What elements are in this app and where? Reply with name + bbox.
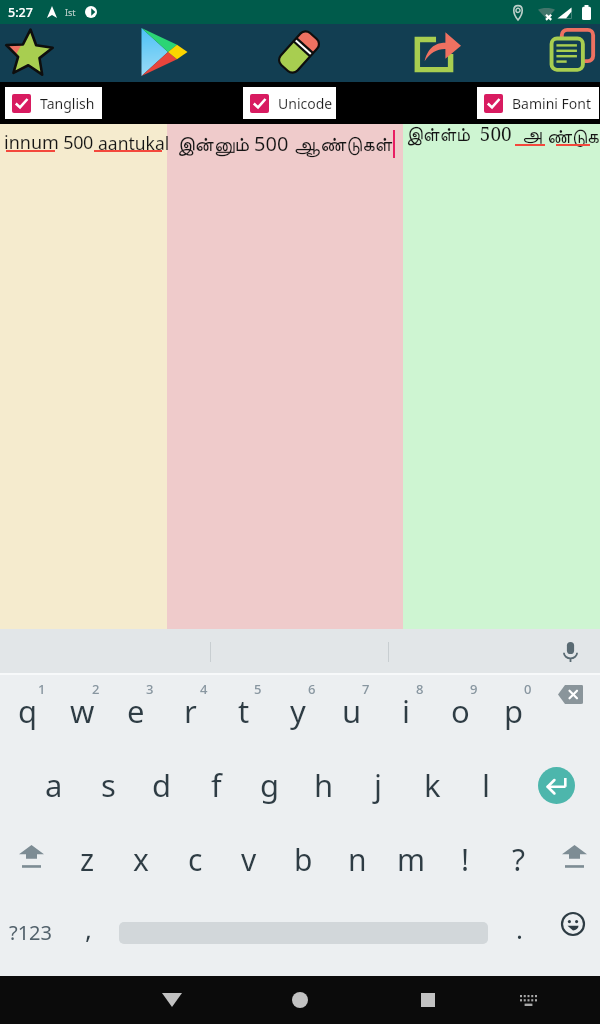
staticText: இன்னும் 500 ஆண்டுகள்	[177, 130, 393, 157]
button[interactable]: 1	[1, 675, 55, 747]
button[interactable]: z	[60, 823, 114, 895]
button[interactable]: 7	[325, 675, 379, 747]
button[interactable]: Open Play Store	[125, 24, 203, 82]
staticText: g	[260, 764, 280, 806]
staticText: m	[397, 839, 426, 880]
button[interactable]: 6	[271, 675, 325, 747]
button[interactable]: h	[297, 749, 351, 821]
button[interactable]: Tanglish	[5, 87, 102, 119]
staticText: 5:27	[8, 4, 33, 21]
button[interactable]: b	[276, 823, 330, 895]
button[interactable]: Share	[395, 24, 475, 82]
staticText: z	[80, 839, 95, 880]
button[interactable]: Unicode	[243, 87, 336, 119]
button[interactable]	[0, 124, 167, 629]
staticText: k	[424, 764, 441, 806]
staticText: 3	[146, 680, 154, 698]
button[interactable]: Back	[142, 976, 202, 1024]
staticText: e	[127, 690, 145, 732]
button[interactable]: 8	[379, 675, 433, 747]
staticText: 8	[416, 680, 424, 698]
button[interactable]: Rate app	[0, 24, 68, 82]
button[interactable]: a	[27, 749, 81, 821]
button[interactable]: v	[222, 823, 276, 895]
staticText: இள்ள்ம் 500	[406, 121, 522, 147]
staticText: !	[461, 839, 470, 880]
staticText: .	[516, 911, 523, 946]
button[interactable]: !	[438, 823, 492, 895]
button[interactable]: Clear text	[260, 24, 338, 82]
staticText: ண்டுகள்	[547, 128, 600, 147]
button[interactable]: d	[135, 749, 189, 821]
staticText: 500	[59, 130, 98, 155]
staticText: v	[241, 839, 257, 880]
staticText: 9	[470, 680, 478, 698]
staticText: ,	[85, 911, 92, 946]
button[interactable]	[211, 629, 388, 675]
staticText: c	[188, 839, 203, 880]
button[interactable]: g	[243, 749, 297, 821]
button[interactable]	[389, 629, 600, 675]
button[interactable]: 9	[433, 675, 487, 747]
button[interactable]: Home	[270, 976, 330, 1024]
button[interactable]: Shift	[2, 819, 58, 891]
staticText: அ	[522, 121, 547, 147]
button[interactable]: ?	[492, 823, 546, 895]
button[interactable]: Bamini Font	[477, 87, 599, 119]
button[interactable]: j	[351, 749, 405, 821]
button[interactable]	[0, 629, 210, 675]
button[interactable]: c	[168, 823, 222, 895]
staticText: ?123	[9, 919, 52, 946]
staticText: q	[18, 690, 38, 732]
staticText: f	[211, 764, 222, 806]
button[interactable]	[403, 124, 600, 629]
button[interactable]: 3	[109, 675, 163, 747]
button[interactable]: Voice input	[556, 638, 584, 666]
button[interactable]	[167, 124, 403, 629]
button[interactable]: Emoji	[546, 891, 600, 963]
button[interactable]: ,	[62, 896, 114, 968]
staticText: Unicode	[278, 94, 333, 113]
staticText: Ist	[65, 6, 76, 18]
staticText: o	[451, 690, 470, 732]
staticText: 5	[254, 680, 262, 698]
staticText: 1	[38, 680, 46, 698]
button[interactable]: 0	[487, 675, 541, 747]
button[interactable]: Switch keyboard	[498, 976, 558, 1024]
staticText: Bamini Font	[512, 94, 592, 113]
button[interactable]: k	[405, 749, 459, 821]
button[interactable]: Backspace	[544, 675, 600, 747]
staticText: aantukal	[98, 131, 170, 155]
button[interactable]: .	[492, 896, 546, 968]
button[interactable]: 4	[163, 675, 217, 747]
button[interactable]: Recent apps	[398, 976, 458, 1024]
staticText: 2	[92, 680, 100, 698]
staticText: d	[152, 764, 172, 806]
button[interactable]: Shift	[545, 819, 600, 891]
staticText: t	[238, 690, 250, 732]
button[interactable]: ?123	[0, 896, 60, 968]
staticText: s	[101, 764, 116, 806]
button[interactable]: n	[330, 823, 384, 895]
button[interactable]: Enter	[528, 749, 584, 821]
staticText: h	[314, 764, 334, 806]
staticText: p	[504, 690, 524, 732]
button[interactable]: Space	[118, 891, 490, 963]
button[interactable]: 5	[217, 675, 271, 747]
button[interactable]: Copy	[530, 24, 600, 82]
staticText: j	[374, 764, 382, 806]
button[interactable]: l	[459, 749, 513, 821]
staticText: innum	[4, 130, 59, 155]
button[interactable]: f	[189, 749, 243, 821]
staticText: a	[45, 764, 63, 806]
staticText: 7	[362, 680, 370, 698]
staticText: Tanglish	[40, 94, 95, 113]
staticText: ?	[512, 839, 526, 880]
button[interactable]: x	[114, 823, 168, 895]
button[interactable]: s	[81, 749, 135, 821]
button[interactable]: m	[384, 823, 438, 895]
staticText: 4	[200, 680, 208, 698]
staticText: u	[342, 690, 362, 732]
staticText: l	[482, 764, 490, 806]
button[interactable]: 2	[55, 675, 109, 747]
